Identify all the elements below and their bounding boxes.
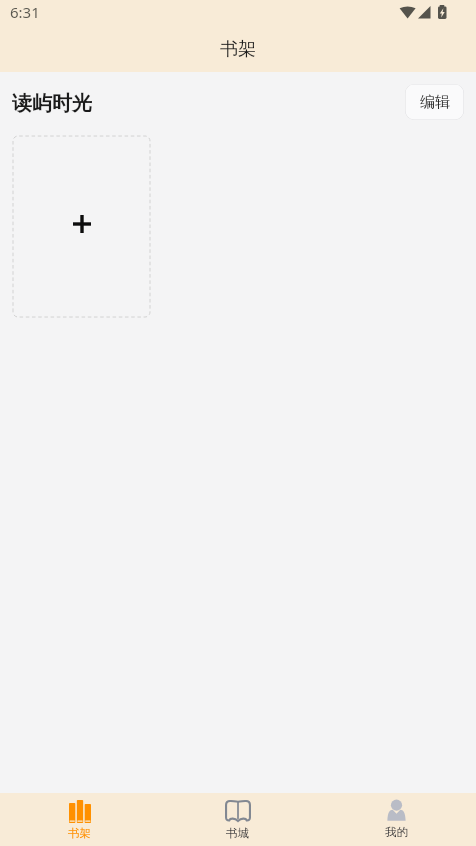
staticText: 读屿时光 [12, 91, 92, 116]
staticText: 书架 [220, 38, 256, 61]
staticText: 6:31 [10, 2, 40, 22]
button[interactable]: 书架 [0, 793, 158, 846]
button[interactable]: 书城 [158, 793, 317, 846]
button[interactable]: 我的 [317, 793, 476, 846]
staticText: 书城 [226, 826, 249, 840]
button[interactable]: 添加书籍 [13, 136, 150, 317]
button[interactable]: 编辑 [405, 84, 464, 120]
staticText: 编辑 [420, 93, 450, 112]
staticText: 书架 [68, 826, 91, 840]
staticText: 我的 [385, 825, 408, 839]
